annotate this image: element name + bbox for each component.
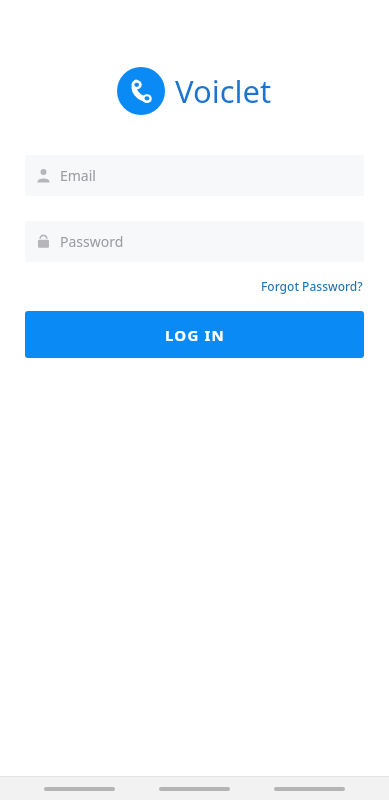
button[interactable]: LOG IN bbox=[25, 311, 364, 358]
staticText: Password bbox=[60, 232, 124, 251]
other: Navigation bbox=[44, 787, 115, 791]
button[interactable]: Forgot Password? bbox=[260, 277, 364, 295]
staticText: Voiclet bbox=[175, 70, 272, 112]
staticText: Email bbox=[60, 166, 96, 185]
other: Navigation bbox=[274, 787, 345, 791]
button[interactable]: Password bbox=[25, 221, 364, 262]
staticText: Forgot Password? bbox=[261, 278, 363, 294]
staticText: LOG IN bbox=[165, 325, 225, 345]
other: Navigation bbox=[159, 787, 230, 791]
button[interactable]: Email bbox=[25, 155, 364, 196]
